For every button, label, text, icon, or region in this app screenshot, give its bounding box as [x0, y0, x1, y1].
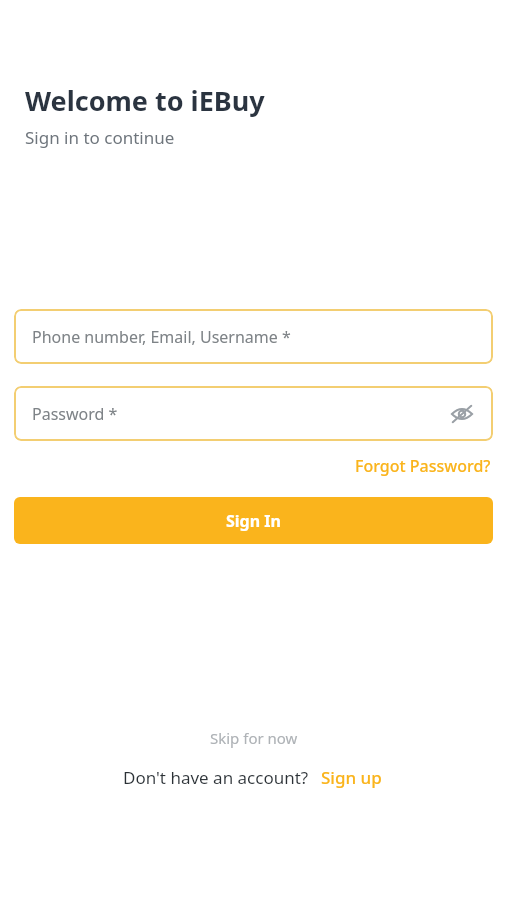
staticText: Sign in to continue [25, 126, 175, 149]
staticText: Password * [32, 403, 118, 425]
button[interactable]: Skip for now [204, 725, 304, 751]
button[interactable]: Sign up [319, 763, 384, 792]
button[interactable]: Show password [443, 395, 481, 433]
button[interactable]: Phone number, Email, Username * [14, 309, 493, 364]
button[interactable]: Sign In [14, 497, 493, 544]
staticText: Sign In [226, 510, 281, 532]
staticText: Phone number, Email, Username * [32, 326, 291, 348]
staticText: Skip for now [210, 728, 298, 748]
staticText: Don't have an account? [123, 766, 309, 789]
button[interactable]: Password * [14, 386, 493, 441]
staticText: Sign up [321, 766, 382, 789]
button[interactable]: Forgot Password? [353, 452, 493, 480]
staticText: Welcome to iEBuy [25, 82, 265, 119]
staticText: Forgot Password? [355, 455, 491, 477]
